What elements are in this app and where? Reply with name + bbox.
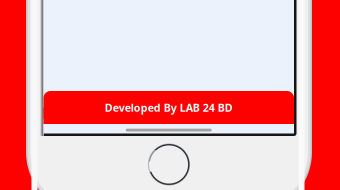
button[interactable]: Home (148, 144, 189, 185)
staticText: Developed By LAB 24 BD (105, 101, 233, 115)
button[interactable]: Developed By LAB 24 BD (43, 91, 294, 124)
